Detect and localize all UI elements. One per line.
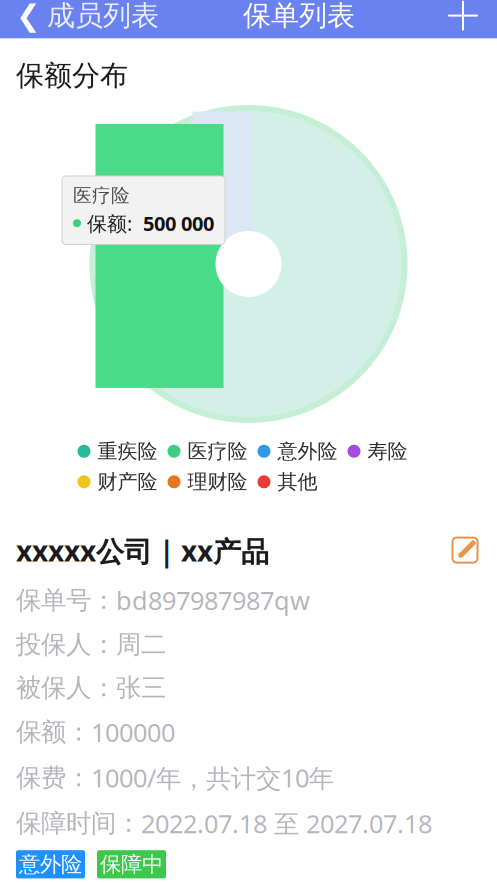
staticText: 保障中: [100, 851, 163, 877]
staticText: 医疗险: [73, 184, 130, 207]
staticText: 成员列表: [47, 0, 159, 33]
staticText: 保单列表: [243, 0, 355, 33]
staticText: 意外险: [277, 439, 337, 464]
staticText: 2022.07.18 至 2027.07.18: [141, 807, 432, 840]
staticText: 被保人：: [16, 672, 116, 703]
staticText: 保障时间：: [16, 808, 141, 839]
staticText: 寿险: [367, 439, 407, 464]
staticText: ❮: [16, 0, 41, 32]
staticText: 意外险: [19, 851, 82, 877]
staticText: 张三: [116, 672, 166, 703]
staticText: 100000: [91, 715, 175, 749]
staticText: 保额:: [87, 210, 137, 236]
staticText: 保额分布: [16, 59, 128, 93]
staticText: xxxxx公司 | xx产品: [16, 532, 269, 569]
staticText: 重疾险: [97, 439, 157, 464]
staticText: 保单号：: [16, 585, 116, 616]
staticText: 其他: [277, 469, 317, 494]
button[interactable]: ❮: [0, 0, 159, 41]
staticText: 500 000: [143, 210, 214, 236]
staticText: 理财险: [187, 469, 247, 494]
staticText: 投保人：: [16, 629, 116, 660]
staticText: 医疗险: [187, 439, 247, 464]
button[interactable]: xxxxx公司 | xx产品: [0, 518, 497, 883]
staticText: 周二: [116, 629, 166, 660]
staticText: bd897987987qw: [116, 583, 310, 617]
staticText: 保额：: [16, 717, 91, 748]
staticText: 1000/年，共计交10年: [91, 761, 334, 794]
staticText: 保费：: [16, 762, 91, 793]
button[interactable]: 添加保单: [439, 0, 497, 38]
staticText: 财产险: [97, 469, 157, 494]
